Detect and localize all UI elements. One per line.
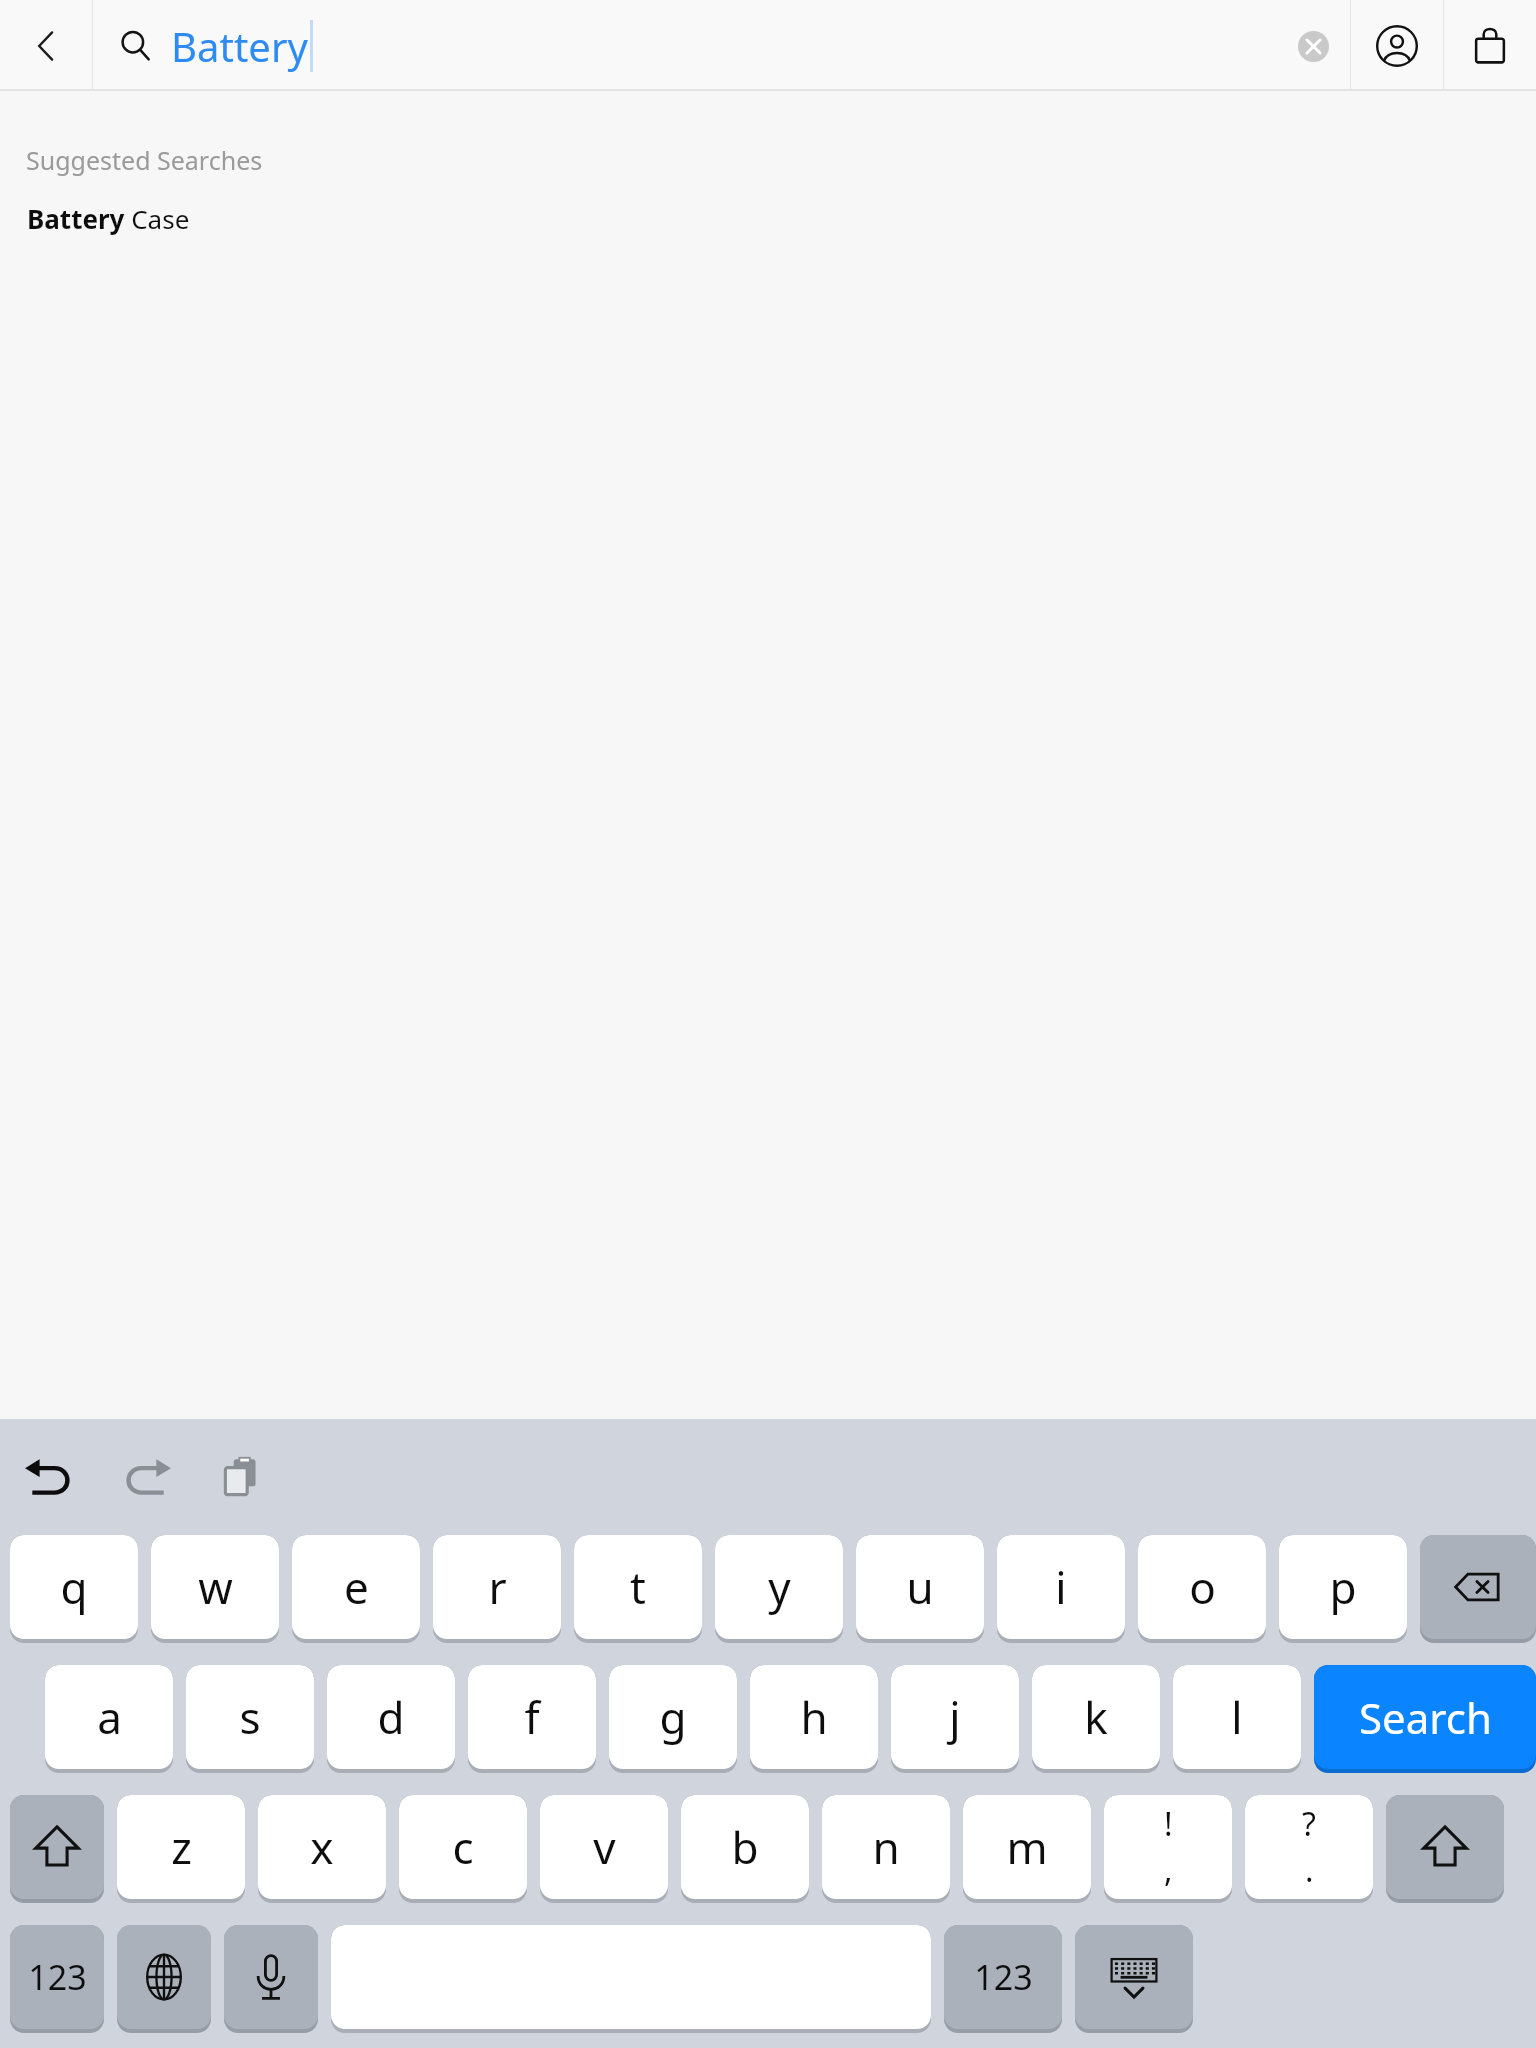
button[interactable]: e	[292, 1535, 420, 1639]
staticText: t	[630, 1557, 646, 1617]
staticText: k	[1084, 1687, 1108, 1747]
staticText: Battery	[171, 19, 308, 73]
button[interactable]	[331, 1925, 931, 2029]
button[interactable]: k	[1032, 1665, 1160, 1769]
button[interactable]: h	[750, 1665, 878, 1769]
staticText: Search	[1359, 1689, 1492, 1746]
button[interactable]: w	[151, 1535, 279, 1639]
staticText: m	[1006, 1817, 1048, 1877]
staticText: g	[659, 1687, 687, 1747]
button[interactable]: g	[609, 1665, 737, 1769]
button[interactable]: s	[186, 1665, 314, 1769]
button[interactable]: u	[856, 1535, 984, 1639]
staticText: ,	[1164, 1848, 1173, 1892]
staticText: l	[1231, 1687, 1243, 1747]
staticText: v	[593, 1817, 616, 1877]
button[interactable]: Voice input	[224, 1925, 318, 2029]
staticText: p	[1329, 1557, 1357, 1617]
button[interactable]: m	[963, 1795, 1091, 1899]
staticText: j	[949, 1687, 961, 1747]
button[interactable]: Shift	[1386, 1795, 1504, 1899]
button[interactable]: !	[1104, 1795, 1232, 1899]
button[interactable]: q	[10, 1535, 138, 1639]
button[interactable]: x	[258, 1795, 386, 1899]
button[interactable]: Account	[1351, 0, 1443, 91]
staticText: f	[524, 1687, 540, 1747]
button[interactable]: Backspace	[1420, 1535, 1536, 1639]
staticText: b	[731, 1817, 759, 1877]
staticText: 123	[974, 1954, 1033, 2000]
button[interactable]: v	[540, 1795, 668, 1899]
button[interactable]: j	[891, 1665, 1019, 1769]
button[interactable]: Search	[1314, 1665, 1536, 1769]
staticText: q	[60, 1557, 88, 1617]
button[interactable]: p	[1279, 1535, 1407, 1639]
staticText: n	[872, 1817, 900, 1877]
button[interactable]: Undo	[14, 1441, 86, 1513]
button[interactable]: o	[1138, 1535, 1266, 1639]
staticText: e	[344, 1557, 369, 1617]
staticText: x	[310, 1817, 334, 1877]
staticText: i	[1055, 1557, 1067, 1617]
button[interactable]: i	[997, 1535, 1125, 1639]
button[interactable]: y	[715, 1535, 843, 1639]
staticText: a	[97, 1687, 122, 1747]
staticText: Suggested Searches	[26, 143, 263, 177]
button[interactable]: 123	[10, 1925, 104, 2029]
button[interactable]: ?	[1245, 1795, 1373, 1899]
button[interactable]: z	[117, 1795, 245, 1899]
staticText: s	[239, 1687, 261, 1747]
staticText: c	[452, 1817, 474, 1877]
button[interactable]: Battery Case	[0, 195, 1536, 241]
staticText: !	[1164, 1802, 1173, 1846]
staticText: r	[488, 1557, 507, 1617]
staticText: h	[800, 1687, 828, 1747]
staticText: ?	[1302, 1802, 1316, 1846]
button[interactable]: l	[1173, 1665, 1301, 1769]
staticText: .	[1305, 1848, 1314, 1892]
staticText: Battery Case	[27, 201, 190, 236]
staticText: d	[377, 1687, 405, 1747]
staticText: w	[198, 1557, 233, 1617]
staticText: u	[906, 1557, 934, 1617]
staticText: y	[768, 1557, 791, 1617]
button[interactable]: r	[433, 1535, 561, 1639]
staticText: 123	[28, 1954, 87, 2000]
button[interactable]: d	[327, 1665, 455, 1769]
button[interactable]: 123	[944, 1925, 1062, 2029]
button[interactable]: Hide keyboard	[1075, 1925, 1193, 2029]
button[interactable]: b	[681, 1795, 809, 1899]
button[interactable]: Redo	[110, 1441, 182, 1513]
button[interactable]: Shift	[10, 1795, 104, 1899]
staticText: o	[1189, 1557, 1216, 1617]
button[interactable]: Change language	[117, 1925, 211, 2029]
button[interactable]: c	[399, 1795, 527, 1899]
button[interactable]: Clear search text	[1291, 24, 1335, 68]
button[interactable]: f	[468, 1665, 596, 1769]
button[interactable]: Back	[0, 0, 92, 91]
staticText: z	[171, 1817, 192, 1877]
button[interactable]: Paste	[206, 1441, 278, 1513]
button[interactable]: n	[822, 1795, 950, 1899]
button[interactable]: t	[574, 1535, 702, 1639]
button[interactable]: a	[45, 1665, 173, 1769]
button[interactable]: Shopping bag	[1444, 0, 1536, 91]
button[interactable]: Battery	[93, 0, 1350, 91]
